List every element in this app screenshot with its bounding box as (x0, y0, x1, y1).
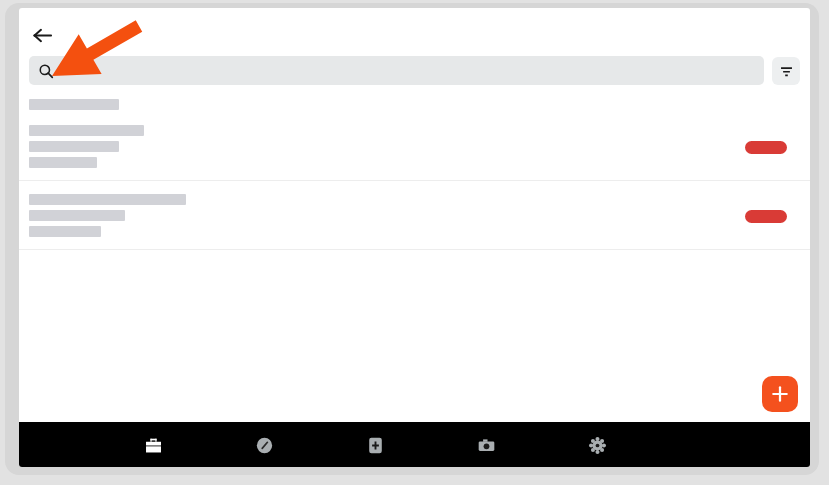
button[interactable]: Add (762, 376, 798, 412)
button[interactable]: Camera (468, 427, 504, 463)
button[interactable]: Add (357, 427, 393, 463)
button[interactable] (19, 125, 810, 180)
button[interactable]: Dashboard (246, 427, 282, 463)
button[interactable]: Settings (579, 427, 615, 463)
button[interactable] (19, 194, 810, 249)
button[interactable]: Jobs (135, 427, 171, 463)
button[interactable] (29, 56, 764, 85)
button[interactable]: Filter (772, 57, 800, 85)
button[interactable]: Back (25, 18, 59, 52)
